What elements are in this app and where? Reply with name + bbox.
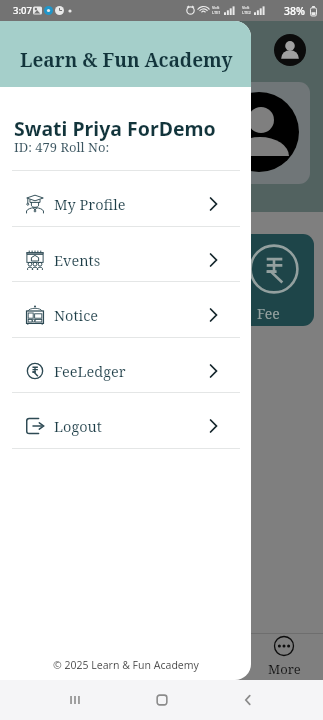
staticText: Swati Priya ForDemo: [14, 115, 216, 142]
staticText: Events: [54, 250, 101, 270]
staticText: Fee: [257, 304, 280, 323]
staticText: 3:07: [13, 4, 32, 17]
staticText: Notice: [54, 305, 99, 325]
button[interactable]: My Profile: [0, 171, 251, 227]
staticText: My Profile: [54, 194, 126, 214]
button[interactable]: FeeLedger: [0, 338, 251, 394]
staticText: © 2025 Learn & Fun Academy: [53, 658, 199, 672]
button[interactable]: Fee: [166, 234, 314, 326]
button[interactable]: Events: [0, 227, 251, 283]
button[interactable]: Notice: [0, 282, 251, 338]
staticText: Logout: [54, 416, 102, 436]
button[interactable]: Profile: [274, 34, 306, 66]
button[interactable]: [12, 82, 310, 184]
staticText: Learn & Fun Academy: [20, 47, 233, 73]
staticText: More: [268, 660, 301, 678]
button[interactable]: Logout: [0, 393, 251, 449]
staticText: 38%: [284, 4, 305, 18]
staticText: FeeLedger: [54, 361, 126, 381]
staticText: Volt LTE1: [212, 5, 221, 15]
button[interactable]: More: [258, 636, 310, 678]
staticText: ID: 479 Roll No:: [14, 138, 110, 156]
staticText: Volt LTE2: [242, 5, 251, 15]
